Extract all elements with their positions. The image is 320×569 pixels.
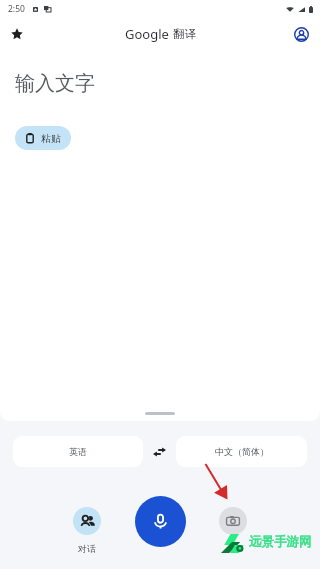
button[interactable]: 中文（简体）	[176, 436, 307, 467]
staticText: 远景手游网	[249, 534, 312, 550]
staticText: Google	[125, 25, 169, 43]
staticText: 中文（简体）	[215, 446, 269, 457]
button[interactable]: Swap languages	[143, 436, 176, 467]
button[interactable]: 粘贴	[15, 126, 71, 150]
staticText: 粘贴	[41, 132, 61, 145]
staticText: 对话	[78, 543, 96, 554]
button[interactable]: 对话	[73, 507, 101, 554]
button[interactable]: Account	[289, 22, 313, 46]
button[interactable]: Microphone	[135, 496, 186, 547]
staticText: 输入文字	[15, 71, 95, 96]
button[interactable]: 英语	[13, 436, 143, 467]
staticText: 英语	[69, 446, 87, 457]
button[interactable]: Saved	[5, 22, 29, 46]
staticText: 2:50	[8, 3, 25, 15]
staticText: 翻译	[173, 27, 196, 41]
button[interactable]: Camera	[219, 507, 247, 535]
